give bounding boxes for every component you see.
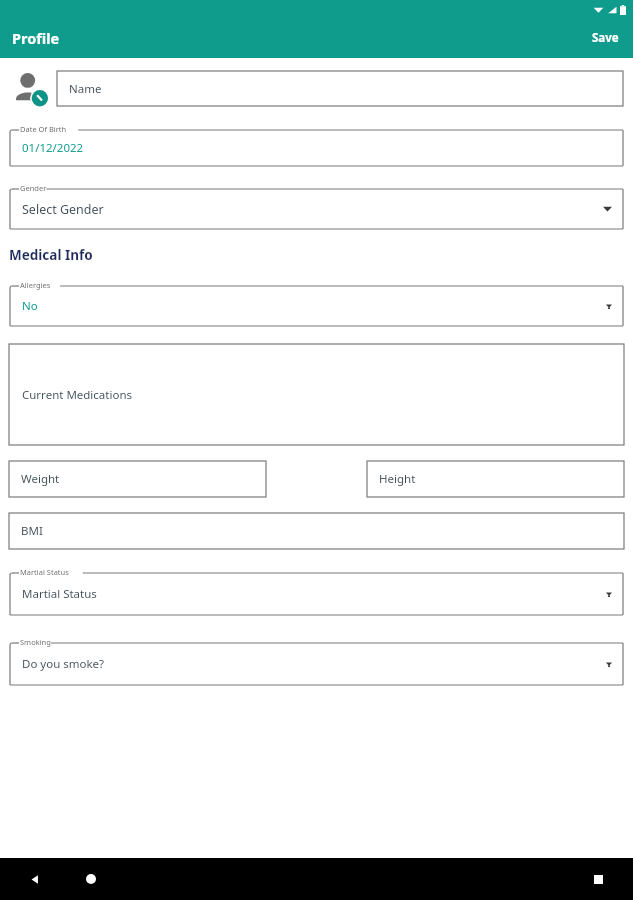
staticText: Select Gender <box>22 201 104 218</box>
button[interactable]: Gender <box>10 183 623 229</box>
button[interactable]: Smoking <box>10 637 623 685</box>
staticText: Gender <box>20 183 47 193</box>
button[interactable]: BMI <box>9 513 624 549</box>
button[interactable]: Save <box>578 22 633 54</box>
staticText: Allergies <box>20 280 51 290</box>
staticText: Profile <box>12 28 60 48</box>
staticText: BMI <box>21 523 43 539</box>
staticText: Smoking <box>20 637 51 647</box>
staticText: Date Of Birth <box>20 124 67 134</box>
button[interactable]: Back <box>22 866 48 892</box>
staticText: Martial Status <box>20 567 69 577</box>
button[interactable]: Date Of Birth <box>10 124 623 166</box>
staticText: Martial Status <box>22 586 97 602</box>
button[interactable]: Current Medications <box>9 344 624 445</box>
button[interactable]: Name <box>57 71 623 106</box>
button[interactable]: Weight <box>9 461 266 497</box>
button[interactable]: Recent apps <box>585 866 611 892</box>
staticText: Save <box>592 30 619 46</box>
button[interactable]: Height <box>367 461 624 497</box>
button[interactable]: Allergies <box>10 280 623 326</box>
button[interactable]: Edit profile photo <box>11 69 49 107</box>
staticText: Medical Info <box>9 246 93 264</box>
staticText: 01/12/2022 <box>22 140 84 156</box>
staticText: Weight <box>21 471 60 487</box>
staticText: No <box>22 298 38 314</box>
staticText: Do you smoke? <box>22 656 105 672</box>
button[interactable]: Home <box>78 866 104 892</box>
staticText: Current Medications <box>22 387 132 403</box>
staticText: Height <box>379 471 416 487</box>
button[interactable]: Martial Status <box>10 567 623 615</box>
staticText: Name <box>69 81 102 97</box>
